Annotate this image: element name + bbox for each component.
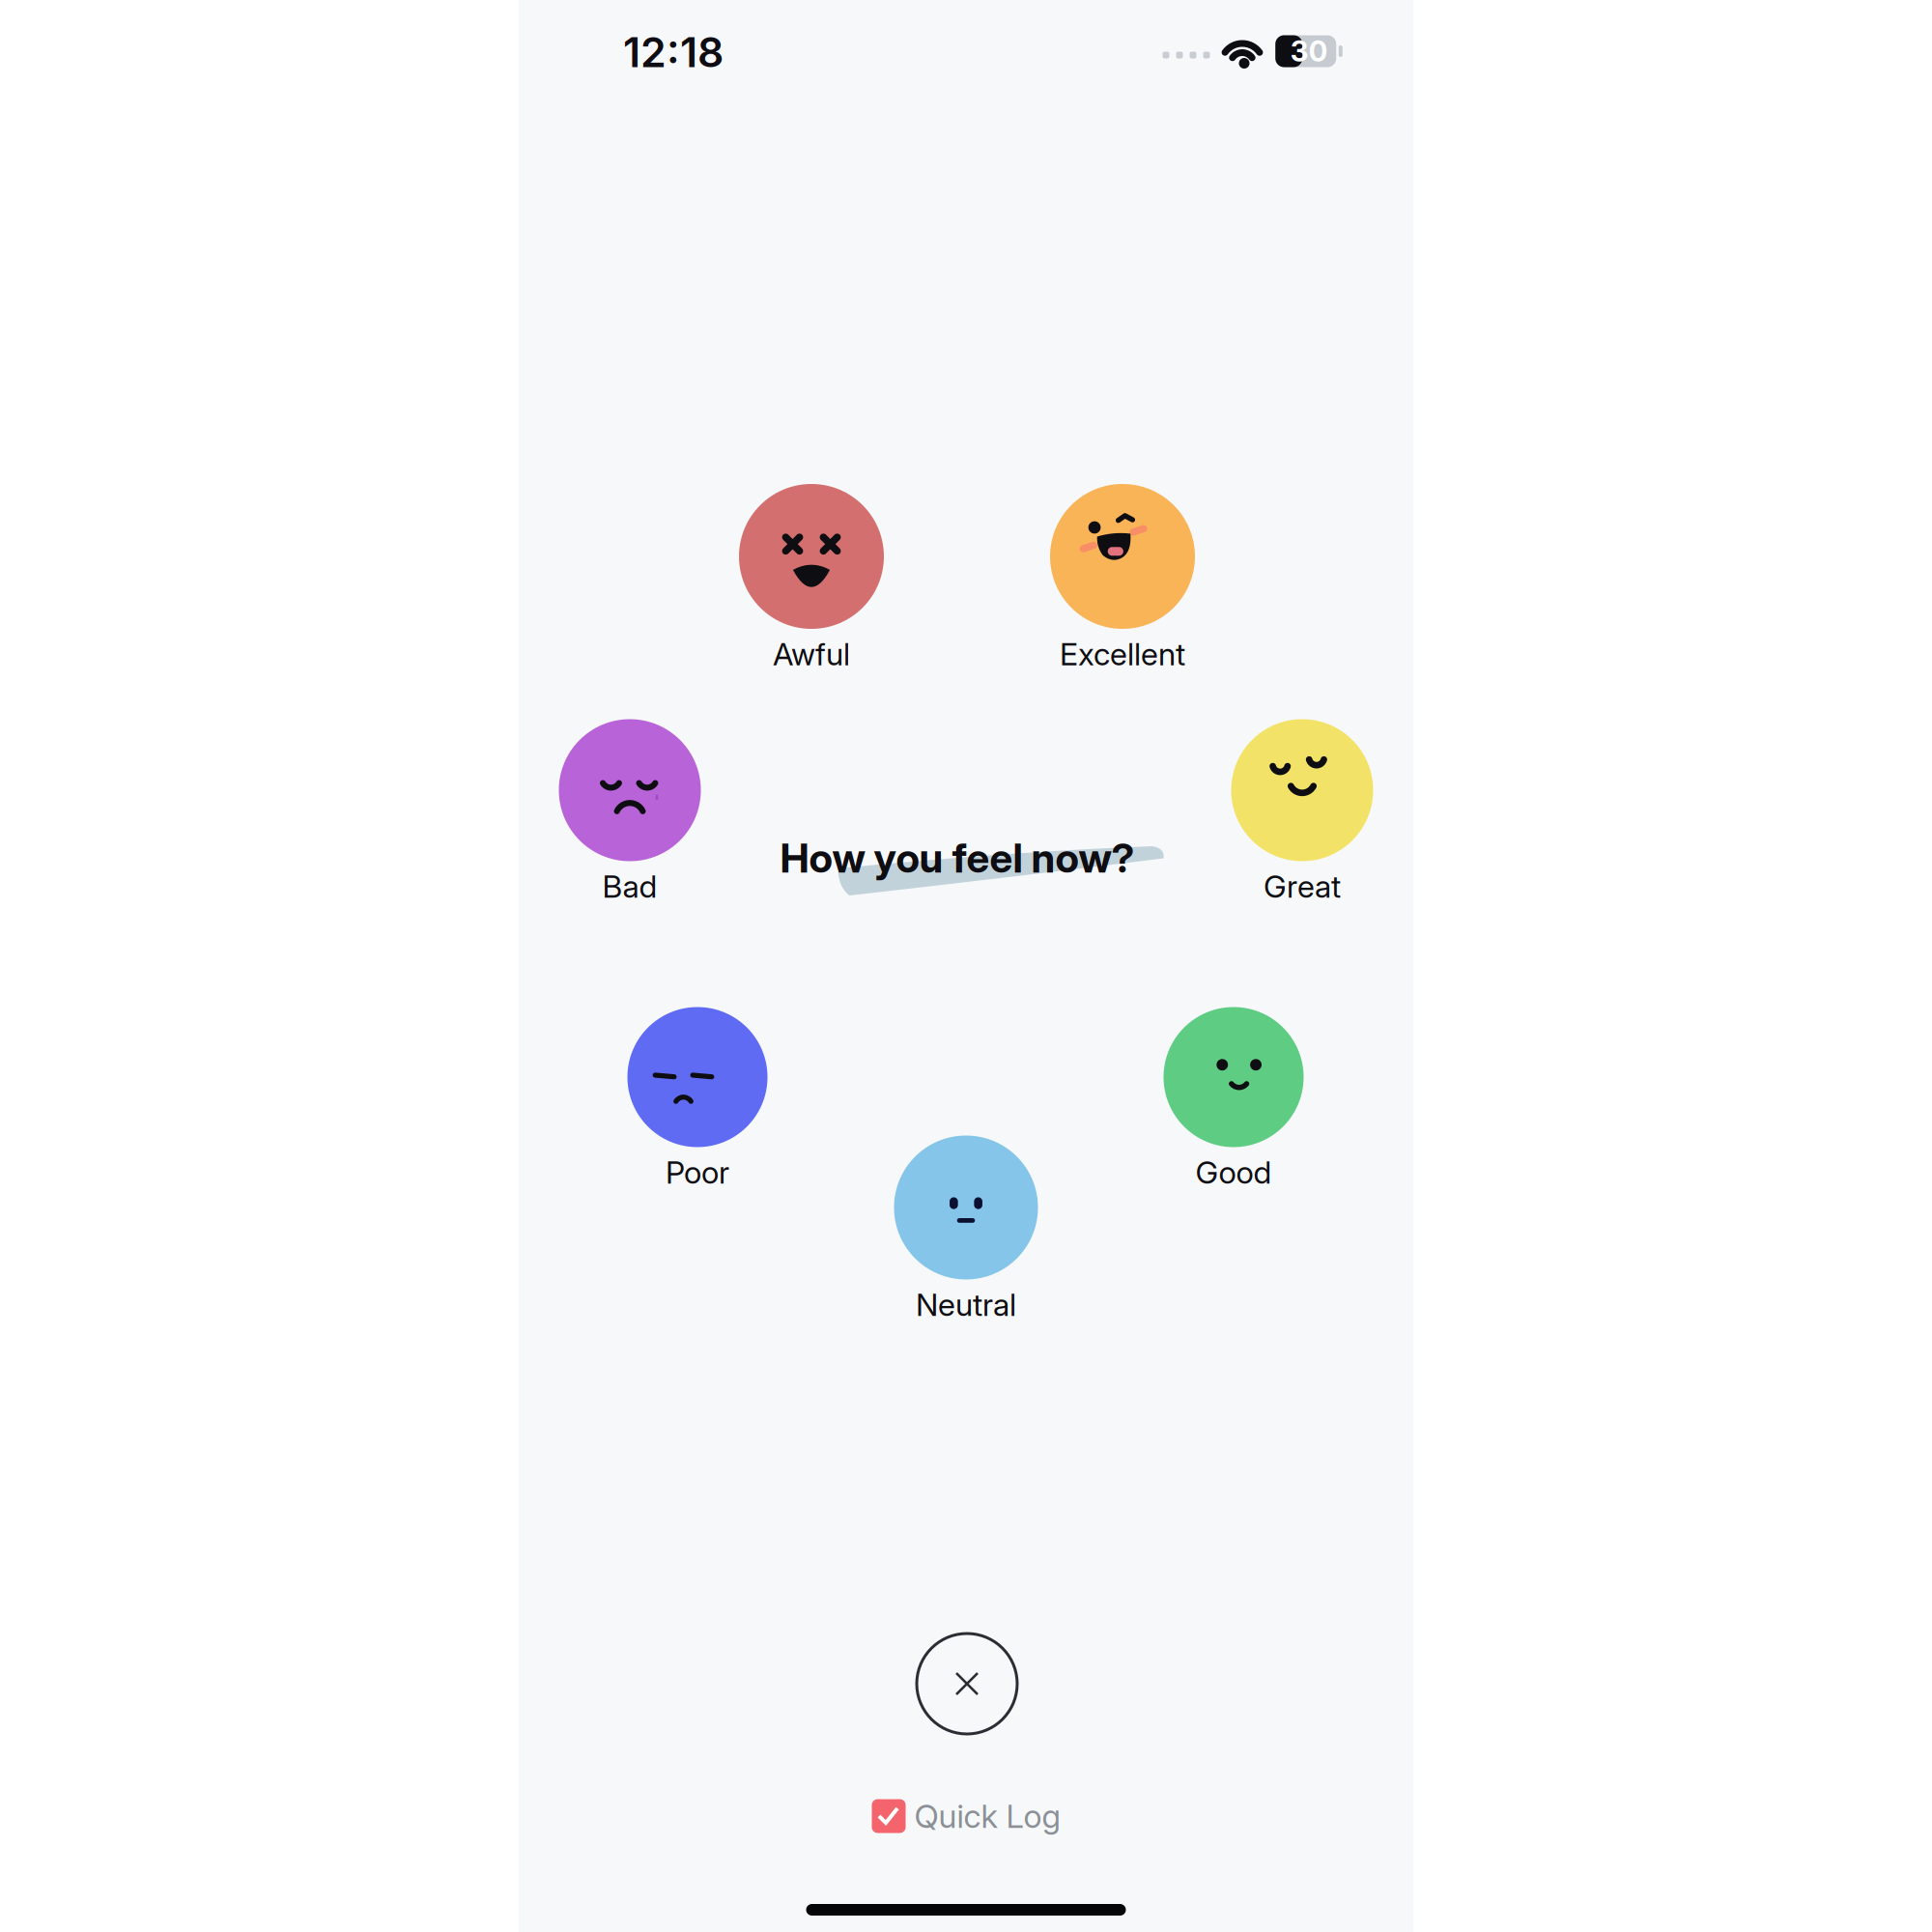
button[interactable]: Close: [911, 1628, 1023, 1740]
staticText: Excellent: [1060, 635, 1185, 673]
staticText: 12:18: [623, 27, 724, 77]
staticText: How you feel now?: [780, 833, 1135, 882]
button[interactable]: Neutral: [894, 1136, 1038, 1324]
button[interactable]: Quick Log: [860, 1787, 1072, 1845]
button[interactable]: Poor: [627, 1007, 767, 1192]
staticText: Quick Log: [914, 1797, 1060, 1835]
button[interactable]: Great: [1231, 719, 1373, 906]
staticText: 30: [1290, 34, 1327, 68]
staticText: Good: [1195, 1154, 1272, 1191]
button[interactable]: Bad: [559, 719, 701, 906]
button[interactable]: Good: [1164, 1007, 1304, 1192]
staticText: Awful: [773, 635, 850, 673]
button[interactable]: Awful: [739, 484, 884, 673]
button[interactable]: Excellent: [1050, 484, 1195, 673]
staticText: Neutral: [916, 1286, 1016, 1323]
staticText: Poor: [666, 1154, 729, 1191]
staticText: Great: [1264, 868, 1341, 905]
staticText: Bad: [602, 868, 657, 905]
